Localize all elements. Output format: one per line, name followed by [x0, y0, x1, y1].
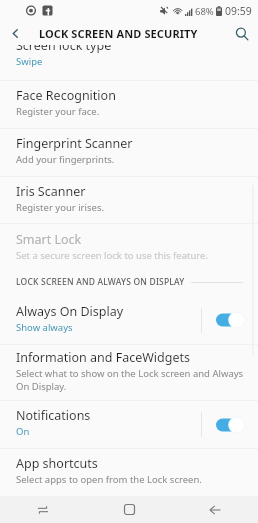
staticText: Add your fingerprints. — [16, 153, 115, 166]
staticText: Information and FaceWidgets — [16, 349, 190, 366]
staticText: On — [16, 425, 30, 438]
staticText: LOCK SCREEN AND ALWAYS ON DISPLAY — [16, 276, 185, 288]
staticText: Register your face. — [16, 105, 100, 118]
staticText: LOCK SCREEN AND SECURITY — [39, 26, 198, 41]
staticText: Select apps to open from the Lock screen… — [16, 473, 202, 486]
staticText: Set a secure screen lock to use this fea… — [16, 249, 208, 262]
button[interactable]: Notifications — [0, 401, 258, 448]
button[interactable]: Screen lock type — [0, 45, 258, 80]
staticText: 09:59 — [225, 4, 252, 18]
button[interactable]: Toggle — [202, 296, 258, 344]
staticText: Fingerprint Scanner — [16, 135, 133, 152]
staticText: 68% — [195, 5, 214, 18]
button[interactable]: Iris Scanner — [0, 177, 258, 223]
staticText: Smart Lock — [16, 231, 82, 248]
staticText: Iris Scanner — [16, 183, 86, 200]
staticText: Register your irises. — [16, 201, 104, 214]
staticText: Screen lock type — [16, 45, 112, 54]
button[interactable]: Information and FaceWidgets — [0, 345, 258, 400]
button[interactable]: Toggle — [202, 401, 258, 448]
button[interactable]: App shortcuts — [0, 449, 258, 496]
staticText: Face Recognition — [16, 87, 116, 104]
button[interactable]: Search — [226, 22, 258, 45]
button[interactable]: Home — [86, 496, 172, 523]
staticText: Always On Display — [16, 303, 124, 320]
button[interactable]: Recents — [0, 496, 86, 523]
staticText: App shortcuts — [16, 455, 98, 472]
button[interactable]: Smart Lock — [0, 224, 258, 272]
button[interactable]: Back — [172, 496, 258, 523]
button[interactable]: Always On Display — [0, 296, 258, 344]
button[interactable]: Fingerprint Scanner — [0, 129, 258, 176]
staticText: Notifications — [16, 407, 91, 424]
staticText: Select what to show on the Lock screen a… — [16, 367, 248, 393]
staticText: Swipe — [16, 55, 43, 68]
button[interactable]: Navigate up — [0, 22, 30, 45]
staticText: Show always — [16, 321, 73, 334]
button[interactable]: Face Recognition — [0, 81, 258, 128]
